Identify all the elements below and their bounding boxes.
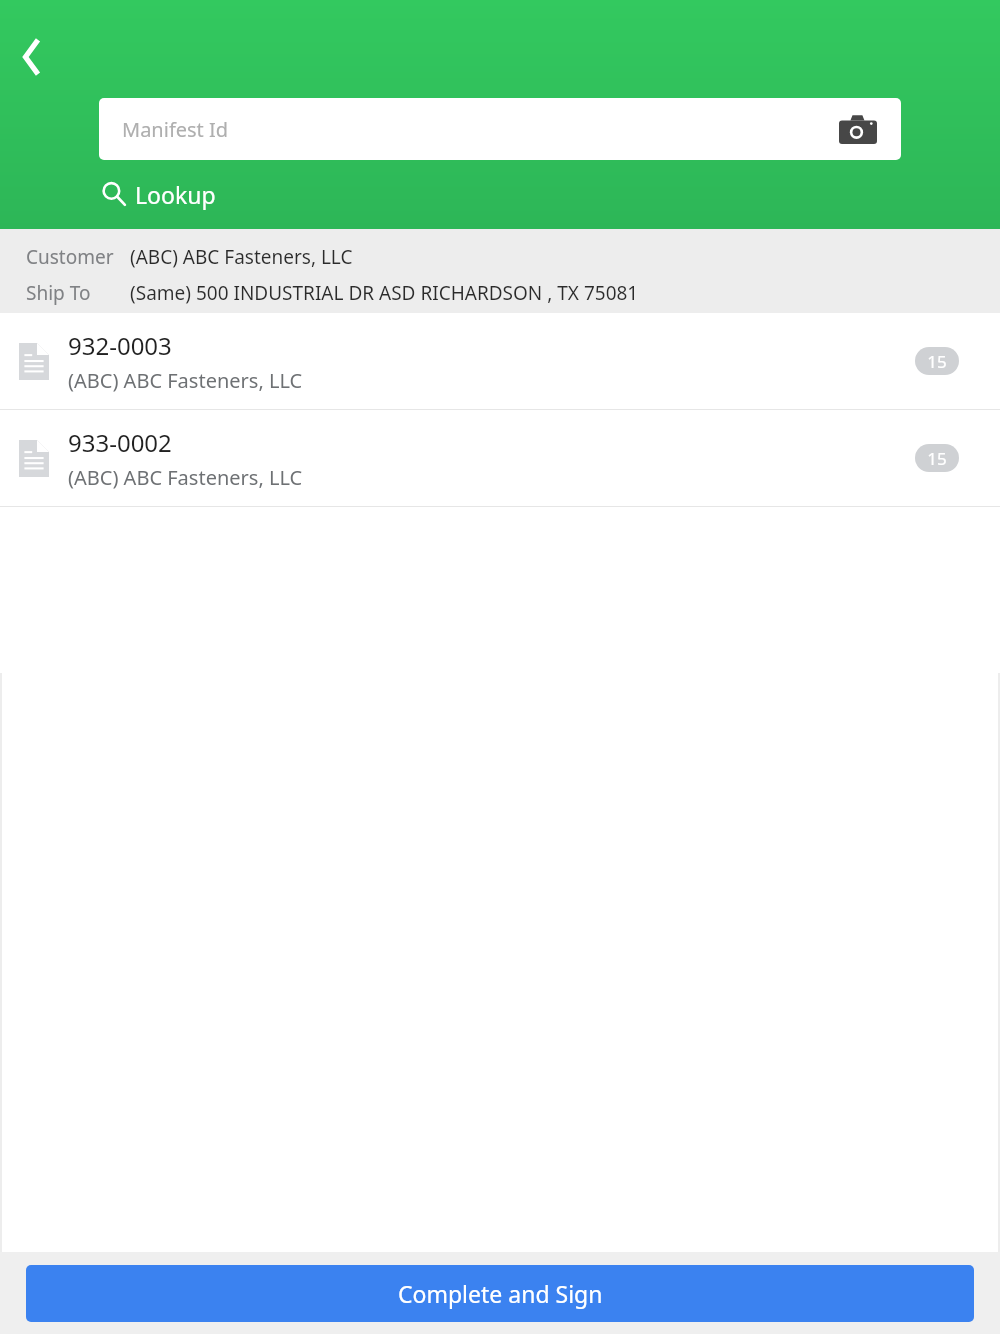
button[interactable]: Complete and Sign (26, 1265, 974, 1322)
staticText: 933-0002 (68, 426, 172, 459)
staticText: 15 (927, 447, 947, 470)
button[interactable]: Scan with camera (835, 106, 881, 152)
staticText: 932-0003 (68, 329, 172, 362)
staticText: 15 (927, 350, 947, 373)
staticText: (ABC) ABC Fasteners, LLC (68, 464, 303, 491)
staticText: (ABC) ABC Fasteners, LLC (130, 244, 353, 270)
staticText: Complete and Sign (398, 1278, 603, 1309)
staticText: Lookup (135, 179, 216, 210)
staticText: Ship To (26, 280, 91, 306)
button[interactable]: 932-0003 (0, 313, 1000, 409)
staticText: Customer (26, 244, 114, 270)
staticText: (Same) 500 INDUSTRIAL DR ASD RICHARDSON … (130, 280, 639, 306)
button[interactable]: Lookup (95, 172, 222, 216)
button[interactable]: Back (6, 33, 54, 81)
button[interactable]: Manifest Id (99, 98, 901, 160)
staticText: (ABC) ABC Fasteners, LLC (68, 367, 303, 394)
button[interactable]: 933-0002 (0, 410, 1000, 506)
staticText: Manifest Id (122, 116, 229, 143)
